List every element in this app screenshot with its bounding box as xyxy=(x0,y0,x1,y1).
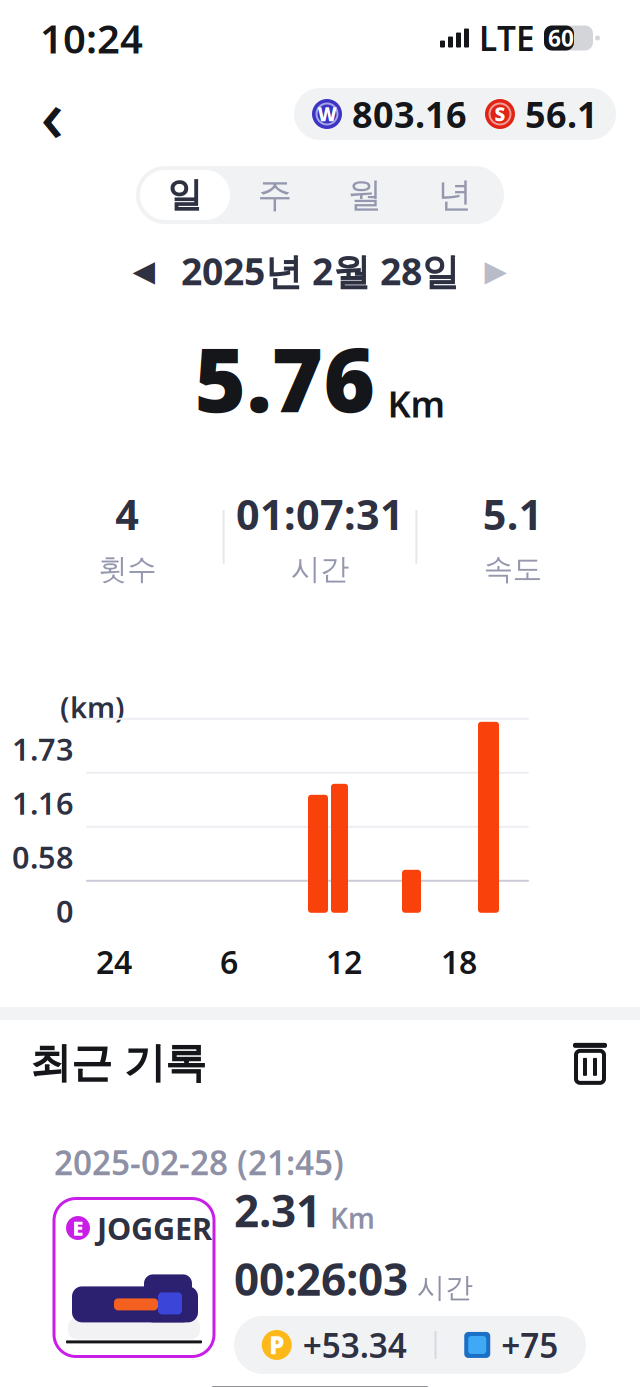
staticText: 1.16 xyxy=(12,782,74,823)
staticText: Km xyxy=(387,380,445,427)
staticText: 년 xyxy=(437,174,472,216)
staticText: 2.31 xyxy=(234,1181,321,1239)
staticText: 주 xyxy=(257,174,292,216)
staticText: 속도 xyxy=(484,551,542,587)
staticText: ▶ xyxy=(484,254,507,287)
staticText: 6 xyxy=(220,940,238,983)
staticText: +75 xyxy=(501,1323,558,1367)
staticText: 1.73 xyxy=(12,728,74,769)
staticText: 횟수 xyxy=(98,551,156,587)
button[interactable]: 2025-02-28 (21:45) xyxy=(32,1118,608,1379)
staticText: 0 xyxy=(56,890,74,931)
button[interactable]: 일 xyxy=(140,170,230,220)
staticText: 월 xyxy=(347,174,382,216)
staticText: E xyxy=(72,1215,83,1241)
staticText: W xyxy=(317,102,336,126)
button[interactable]: Delete records xyxy=(570,1041,610,1085)
button[interactable]: W xyxy=(294,88,616,140)
staticText: 5.76 xyxy=(194,320,375,436)
staticText: 2025년 2월 28일 xyxy=(181,246,459,296)
staticText: 0.58 xyxy=(12,836,74,877)
button[interactable]: 년 xyxy=(410,170,500,220)
staticText: 5.1 xyxy=(483,486,543,541)
staticText: P xyxy=(269,1329,284,1361)
button[interactable]: 주 xyxy=(230,170,320,220)
staticText: 803.16 xyxy=(352,90,467,138)
staticText: JOGGER xyxy=(97,1208,212,1248)
staticText: 일 xyxy=(167,174,202,216)
staticText: ‹ xyxy=(40,66,63,162)
staticText: LTE xyxy=(479,16,535,60)
staticText: 2025-02-28 (21:45) xyxy=(54,1140,344,1185)
staticText: 24 xyxy=(96,940,132,983)
staticText: 18 xyxy=(441,940,477,983)
staticText: (km) xyxy=(60,687,125,726)
staticText: 00:26:03 xyxy=(234,1249,408,1308)
staticText: 60 xyxy=(548,23,574,53)
button[interactable]: Back xyxy=(24,86,80,142)
staticText: Km xyxy=(330,1199,375,1236)
staticText: S xyxy=(494,102,505,126)
staticText: 12 xyxy=(326,940,362,983)
button[interactable]: Previous day xyxy=(121,248,167,294)
staticText: 01:07:31 xyxy=(236,486,404,541)
staticText: 4 xyxy=(115,486,139,541)
button[interactable]: Next day xyxy=(473,248,519,294)
staticText: ◀ xyxy=(132,254,155,287)
staticText: 56.1 xyxy=(525,90,598,138)
staticText: 10:24 xyxy=(40,11,143,64)
staticText: 시간 xyxy=(291,551,349,587)
button[interactable]: 월 xyxy=(320,170,410,220)
staticText: 최근 기록 xyxy=(30,1037,206,1088)
staticText: +53.34 xyxy=(303,1323,407,1367)
staticText: 시간 xyxy=(417,1271,473,1305)
